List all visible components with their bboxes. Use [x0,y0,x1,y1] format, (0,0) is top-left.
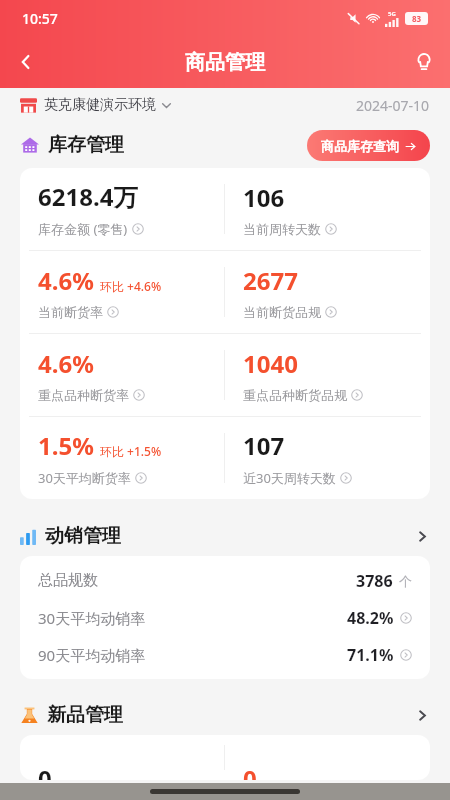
staticText: 当前断货率 [38,304,103,320]
staticText: 个 [399,573,412,589]
staticText: 新品管理 [47,703,123,727]
staticText: 83 [412,13,422,24]
staticText: 2677 [243,264,298,297]
staticText: 107 [243,429,285,462]
button[interactable]: 总品规数 [20,562,430,599]
staticText: 2024-07-10 [356,96,430,115]
staticText: 30天平均动销率 [38,608,146,628]
staticText: 英克康健演示环境 [44,96,156,114]
staticText: 近30天周转天数 [243,469,336,487]
staticText: 1040 [243,347,298,380]
button[interactable]: 107 [225,417,430,499]
staticText: 库存金额 (零售) [38,220,128,238]
staticText: 10:57 [22,9,58,28]
button[interactable]: 新品管理 [0,695,450,735]
button[interactable]: Tips [398,36,450,88]
button[interactable]: 30天平均动销率 [20,599,430,636]
staticText: 重点品种断货品规 [243,387,347,403]
staticText: 4.6% [38,347,94,380]
staticText: 0 [38,762,52,780]
button[interactable]: 2677 [225,251,430,333]
staticText: 5G [388,10,396,18]
staticText: 库存管理 [48,133,124,157]
button[interactable]: 英克康健演示环境 [20,96,172,114]
button[interactable]: Back [0,36,52,88]
staticText: 0 [243,762,257,780]
staticText: 环比 +4.6% [100,278,162,294]
button[interactable]: 90天平均动销率 [20,636,430,673]
staticText: 48.2% [347,607,394,629]
staticText: 动销管理 [45,524,121,548]
button[interactable]: 4.6% [20,251,224,333]
staticText: 4.6% [38,264,94,297]
staticText: 当前断货品规 [243,304,321,320]
staticText: 总品规数 [38,571,98,590]
staticText: 商品管理 [185,50,265,75]
staticText: 30天平均断货率 [38,469,131,487]
staticText: 71.1% [347,644,394,666]
button[interactable]: 1.5% [20,417,224,499]
staticText: 1.5% [38,429,94,462]
button[interactable]: 4.6% [20,334,224,416]
button[interactable]: 动销管理 [0,516,450,556]
staticText: 商品库存查询 [321,138,399,154]
staticText: 重点品种断货率 [38,387,129,403]
staticText: 6218.4万 [38,180,138,213]
staticText: 90天平均动销率 [38,645,146,665]
button[interactable]: 1040 [225,334,430,416]
staticText: 环比 +1.5% [100,443,162,459]
button[interactable]: 6218.4万 [20,168,224,250]
staticText: 106 [243,181,285,214]
staticText: 当前周转天数 [243,221,321,237]
button[interactable]: 商品库存查询 [307,130,430,161]
button[interactable]: 106 [225,168,430,250]
staticText: 3786 [356,570,393,592]
